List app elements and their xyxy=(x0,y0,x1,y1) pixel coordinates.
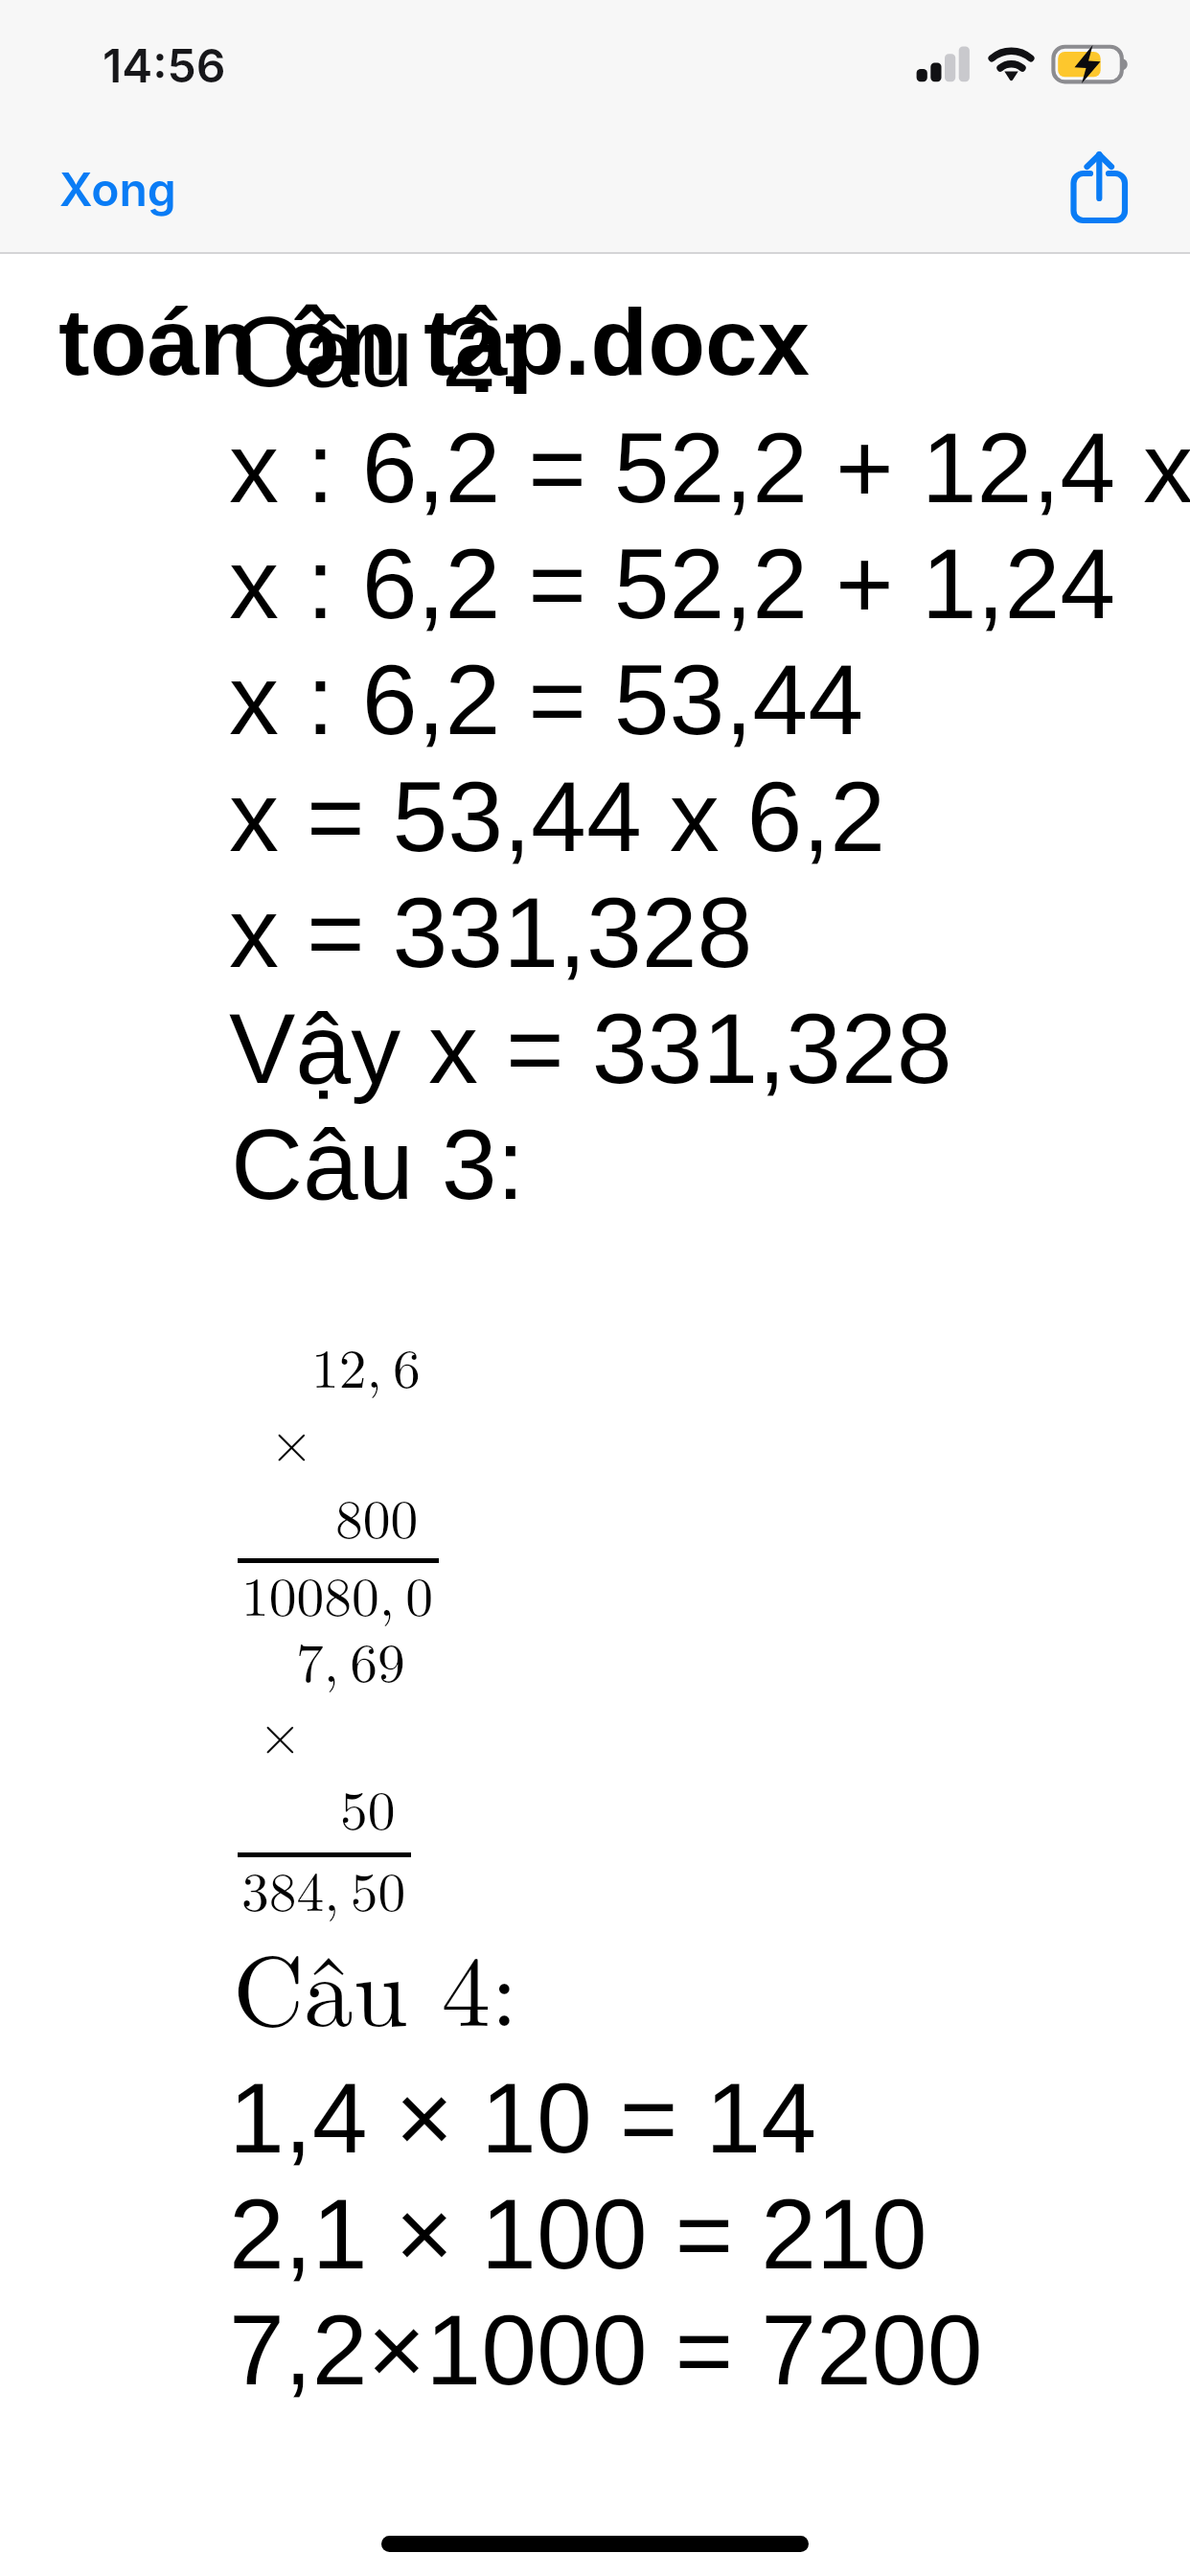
button[interactable]: Xong xyxy=(46,149,186,230)
staticText: toán ôn tập.docx xyxy=(58,289,810,394)
staticText: × xyxy=(270,1399,313,1477)
button[interactable]: Câu 2: xyxy=(0,0,1190,2576)
staticText: x = 331,328 xyxy=(229,877,753,988)
staticText: x : 6,2 = 53,44 xyxy=(229,644,864,755)
staticText: 800 xyxy=(335,1476,419,1553)
staticText: Câu 2: xyxy=(231,296,525,407)
staticText: 14:56 xyxy=(103,37,226,93)
staticText: 10080, 0 xyxy=(241,1553,433,1631)
staticText: x = 53,44 x 6,2 xyxy=(229,761,886,872)
staticText: Câu 3: xyxy=(231,1109,525,1220)
staticText: 50 xyxy=(340,1767,396,1845)
staticText: x : 6,2 = 52,2 + 12,4 x xyxy=(229,412,1190,523)
staticText: Câu 4: xyxy=(233,1915,518,2055)
staticText: Vậy x = 331,328 xyxy=(229,993,952,1104)
staticText: x : 6,2 = 52,2 + 1,24 xyxy=(229,528,1116,639)
staticText: 2,1 × 100 = 210 xyxy=(229,2178,927,2289)
staticText: 384, 50 xyxy=(241,1849,406,1926)
staticText: × xyxy=(259,1691,302,1769)
button[interactable]: Share xyxy=(1054,134,1150,238)
staticText: 12, 6 xyxy=(311,1325,421,1403)
staticText: 7, 69 xyxy=(296,1620,405,1697)
staticText: Xong xyxy=(59,161,176,217)
staticText: 1,4 × 10 = 14 xyxy=(229,2062,816,2173)
staticText: 7,2×1000 = 7200 xyxy=(229,2294,983,2405)
